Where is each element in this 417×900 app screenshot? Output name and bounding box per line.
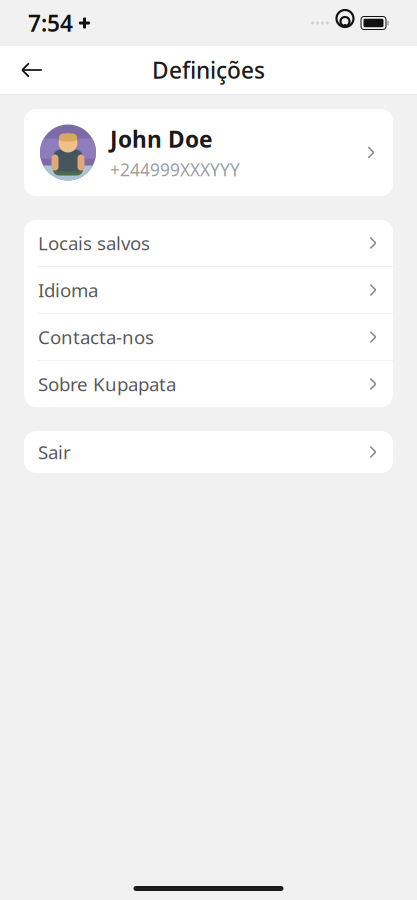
staticText: 7:54 xyxy=(28,8,73,38)
button[interactable]: Sair xyxy=(24,431,393,473)
button[interactable]: Sobre Kupapata xyxy=(24,361,393,407)
staticText: Idioma xyxy=(38,278,98,302)
button[interactable]: John Doe xyxy=(24,109,393,196)
staticText: Locais salvos xyxy=(38,231,150,255)
staticText: Sobre Kupapata xyxy=(38,372,176,396)
button[interactable]: Contacta-nos xyxy=(24,314,393,360)
button[interactable]: Idioma xyxy=(24,267,393,313)
button[interactable]: Back xyxy=(10,48,54,92)
staticText: John Doe xyxy=(110,124,213,154)
staticText: Contacta-nos xyxy=(38,325,154,349)
staticText: Definições xyxy=(152,55,265,85)
staticText: Sair xyxy=(38,440,71,464)
staticText: +244999XXXYYY xyxy=(110,158,240,181)
button[interactable]: Locais salvos xyxy=(24,220,393,266)
